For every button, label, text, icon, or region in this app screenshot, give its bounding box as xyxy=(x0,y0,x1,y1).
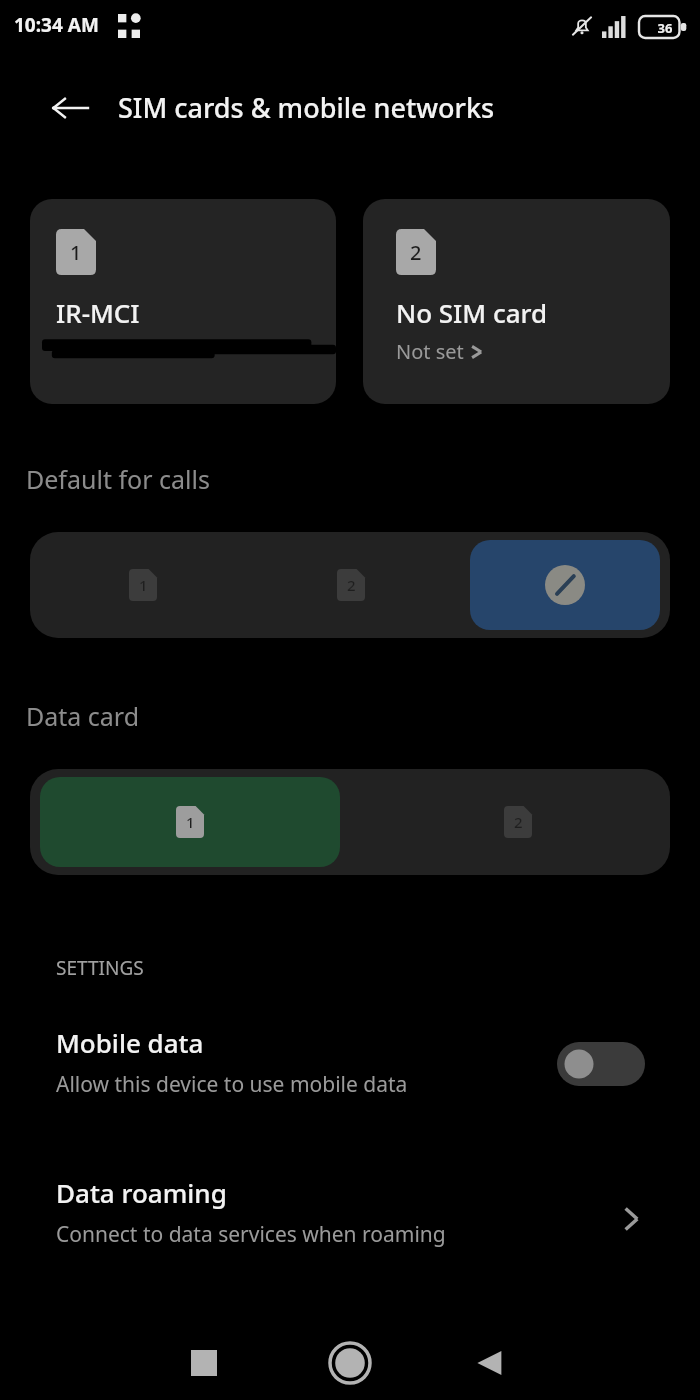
button[interactable]: Back xyxy=(44,84,96,132)
button[interactable]: Home xyxy=(318,1331,382,1395)
button[interactable]: Mobile data xyxy=(0,1010,700,1120)
staticText: 2 xyxy=(410,239,422,266)
staticText: 1 xyxy=(70,239,82,266)
button[interactable]: 2 xyxy=(363,199,670,404)
button[interactable]: 1 xyxy=(40,542,245,628)
button[interactable]: Data roaming xyxy=(0,1160,700,1270)
staticText: Mobile data xyxy=(56,1025,204,1060)
staticText: IR-MCI xyxy=(56,295,140,330)
staticText: SIM cards & mobile networks xyxy=(118,89,495,126)
button[interactable]: Ask every time xyxy=(470,540,660,630)
staticText: 1 xyxy=(186,812,195,832)
staticText: Allow this device to use mobile data xyxy=(56,1070,408,1099)
button[interactable]: 2 xyxy=(413,779,623,865)
staticText: No SIM card xyxy=(396,295,548,330)
staticText: Connect to data services when roaming xyxy=(56,1220,446,1249)
staticText: 10:34 AM xyxy=(14,12,99,38)
staticText: 36 xyxy=(648,19,682,37)
button[interactable]: 1 xyxy=(30,199,336,404)
staticText: 1 xyxy=(139,575,148,595)
staticText: Not set xyxy=(396,338,464,365)
staticText: Data roaming xyxy=(56,1175,227,1210)
staticText: Data card xyxy=(26,699,140,733)
button[interactable]: Recent apps xyxy=(172,1331,236,1395)
staticText: Default for calls xyxy=(26,462,210,496)
button[interactable]: 1 xyxy=(40,777,340,867)
staticText: 2 xyxy=(514,812,523,832)
staticText: SETTINGS xyxy=(56,955,144,981)
button[interactable]: 2 xyxy=(248,542,453,628)
staticText: 2 xyxy=(347,575,356,595)
button[interactable]: Back xyxy=(458,1331,522,1395)
